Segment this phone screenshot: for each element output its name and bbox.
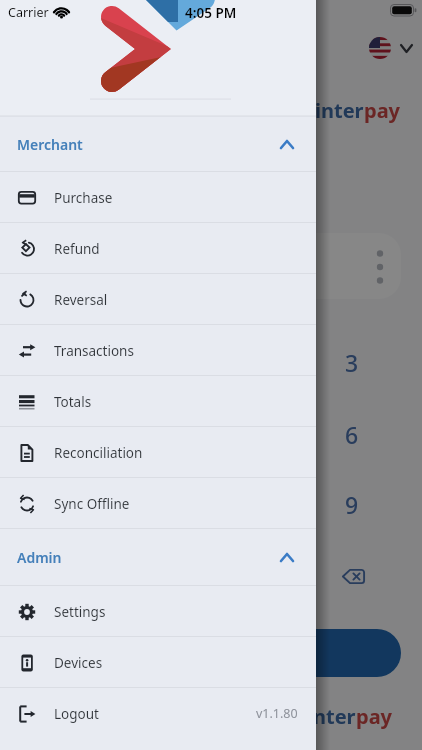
staticText: 4:05 PM (185, 4, 237, 22)
button[interactable]: Refund (0, 223, 316, 274)
button[interactable]: 3 (322, 332, 382, 392)
staticText: Settings (54, 603, 106, 621)
staticText: pay (356, 703, 393, 730)
button[interactable]: 1 (40, 332, 100, 392)
staticText: 6 (345, 419, 359, 450)
button[interactable]: 4 (40, 404, 100, 464)
staticText: 1 (63, 347, 77, 378)
staticText: 9 (345, 489, 359, 520)
staticText: Admin (17, 548, 62, 567)
staticText: inter (307, 703, 356, 730)
staticText: Totals (54, 393, 92, 411)
button[interactable]: Devices (0, 637, 316, 688)
staticText: Reversal (54, 291, 108, 309)
button[interactable]: Admin (0, 529, 316, 586)
button[interactable]: Purchase (0, 172, 316, 223)
button[interactable]: . (40, 546, 100, 606)
button[interactable]: 6 (322, 404, 382, 464)
button[interactable]: Reconciliation (0, 427, 316, 478)
staticText: 3 (345, 347, 359, 378)
staticText: Reconciliation (54, 444, 143, 462)
button[interactable]: 9 (322, 474, 382, 534)
button[interactable]: Reversal (0, 274, 316, 325)
staticText: Carrier (8, 4, 49, 21)
button[interactable]: Settings (0, 586, 316, 637)
button[interactable] (368, 37, 416, 60)
staticText: Purchase (54, 189, 113, 207)
button[interactable]: 7 (40, 474, 100, 534)
button[interactable]: Transactions (0, 325, 316, 376)
button[interactable]: Sync Offline (0, 478, 316, 529)
staticText: Transactions (54, 342, 134, 360)
staticText: v1.1.80 (256, 705, 298, 722)
staticText: inter (315, 97, 364, 124)
staticText: 7 (63, 489, 77, 520)
staticText: pay (364, 97, 401, 124)
button[interactable]: Logout (0, 688, 316, 739)
button[interactable]: Merchant (0, 116, 316, 172)
button[interactable] (323, 546, 383, 606)
staticText: Devices (54, 654, 103, 672)
button[interactable]: Totals (0, 376, 316, 427)
button[interactable] (20, 629, 401, 677)
staticText: Logout (54, 705, 99, 723)
staticText: Merchant (17, 135, 83, 154)
staticText: Sync Offline (54, 495, 130, 513)
staticText: Refund (54, 240, 100, 258)
